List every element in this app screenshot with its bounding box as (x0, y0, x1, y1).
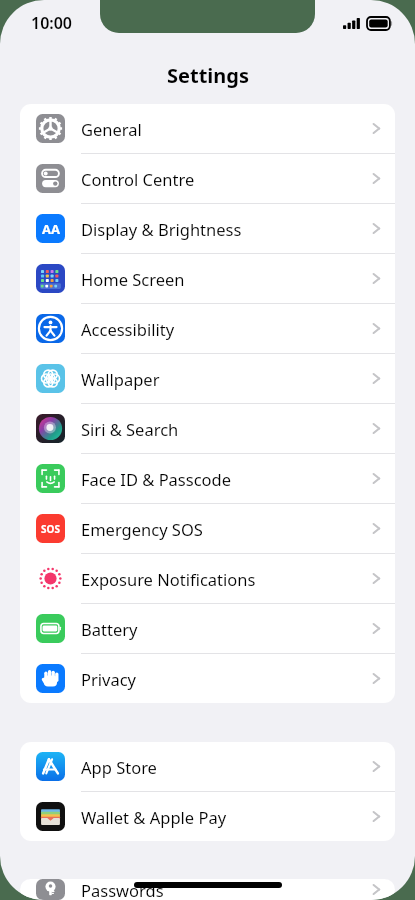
staticText: Home Screen (81, 268, 372, 290)
button[interactable]: Siri & Search (20, 404, 395, 453)
staticText: Wallpaper (81, 368, 372, 390)
staticText: App Store (81, 756, 372, 778)
staticText: Siri & Search (81, 418, 372, 440)
button[interactable]: Passwords (20, 879, 395, 900)
staticText: Display & Brightness (81, 218, 372, 240)
staticText: Settings (167, 62, 249, 89)
button[interactable]: Battery (20, 604, 395, 653)
button[interactable]: Exposure Notifications (20, 554, 395, 603)
button[interactable]: Home Screen (20, 254, 395, 303)
staticText: Accessibility (81, 318, 372, 340)
staticText: Passwords (81, 879, 372, 900)
staticText: Battery (81, 618, 372, 640)
button[interactable]: App Store (20, 742, 395, 791)
button[interactable]: General (20, 104, 395, 153)
staticText: Emergency SOS (81, 518, 372, 540)
staticText: AA (42, 220, 60, 238)
button[interactable]: Accessibility (20, 304, 395, 353)
staticText: Face ID & Passcode (81, 468, 372, 490)
staticText: 10:00 (31, 12, 73, 34)
staticText: Privacy (81, 668, 372, 690)
staticText: Exposure Notifications (81, 568, 372, 590)
staticText: SOS (41, 522, 60, 536)
staticText: Control Centre (81, 168, 372, 190)
button[interactable]: Wallet & Apple Pay (20, 792, 395, 841)
staticText: General (81, 118, 372, 140)
staticText: Wallet & Apple Pay (81, 806, 372, 828)
button[interactable]: Control Centre (20, 154, 395, 203)
button[interactable]: Face ID & Passcode (20, 454, 395, 503)
button[interactable]: Privacy (20, 654, 395, 703)
button[interactable]: Wallpaper (20, 354, 395, 403)
button[interactable]: AA (20, 204, 395, 253)
button[interactable]: SOS (20, 504, 395, 553)
